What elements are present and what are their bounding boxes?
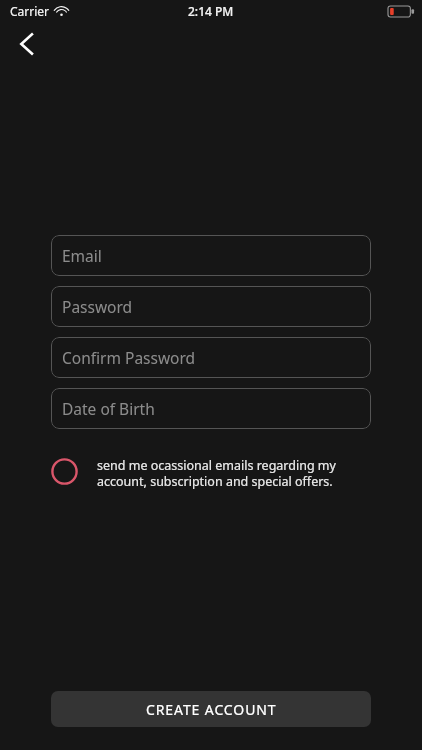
button[interactable]: Date of Birth (51, 388, 371, 429)
button[interactable]: Back (4, 22, 48, 66)
button[interactable]: Marketing emails opt-in (51, 457, 382, 490)
staticText: send me ocassional emails regarding my a… (97, 457, 336, 490)
staticText: 2:14 PM (188, 3, 234, 19)
staticText: Email (62, 245, 102, 266)
staticText: Confirm Password (62, 347, 196, 368)
staticText: Password (62, 296, 133, 317)
staticText: CREATE ACCOUNT (146, 700, 277, 719)
staticText: Date of Birth (62, 398, 155, 419)
staticText: Carrier (10, 3, 50, 19)
button[interactable]: Confirm Password (51, 337, 371, 378)
button[interactable]: Password (51, 286, 371, 327)
button[interactable]: Email (51, 235, 371, 276)
other: Marketing emails opt-in (51, 458, 78, 485)
button[interactable]: CREATE ACCOUNT (51, 691, 371, 727)
